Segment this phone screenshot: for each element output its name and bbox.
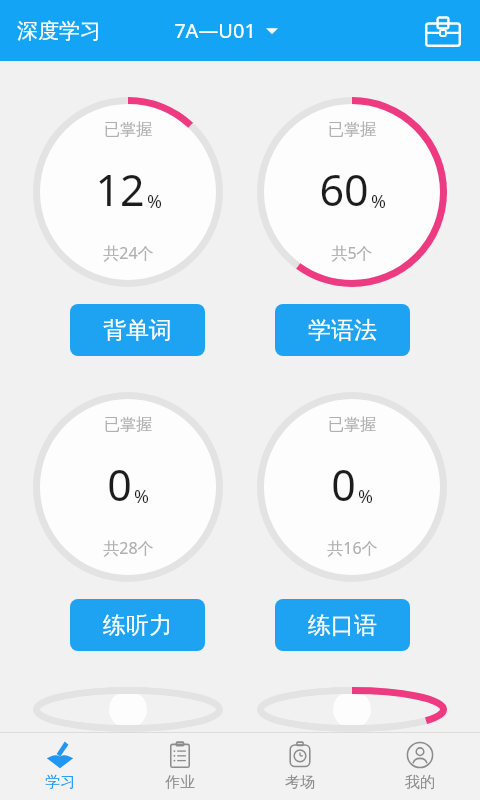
staticText: 7A—U01 — [174, 17, 256, 44]
staticText: 已掌握 — [104, 120, 152, 140]
button[interactable]: 练听力 — [70, 599, 205, 651]
button[interactable]: 考场 — [240, 733, 360, 800]
button[interactable]: 练口语 — [275, 599, 410, 651]
staticText: 0 — [107, 455, 132, 514]
staticText: 背单词 — [103, 316, 172, 345]
button[interactable]: 学语法 — [275, 304, 410, 356]
button[interactable]: 我的 — [360, 733, 480, 800]
staticText: 学习 — [45, 773, 75, 792]
button[interactable]: 7A—U01 — [168, 12, 284, 49]
staticText: 共24个 — [103, 242, 154, 264]
staticText: 练听力 — [103, 611, 172, 640]
button[interactable]: 已掌握 — [257, 687, 447, 732]
staticText: 60 — [319, 160, 369, 219]
staticText: 考场 — [285, 773, 315, 792]
staticText: 12 — [95, 160, 145, 219]
button[interactable]: 已掌握 — [257, 392, 447, 582]
staticText: 共16个 — [327, 537, 378, 559]
staticText: 已掌握 — [328, 415, 376, 435]
button[interactable]: 已掌握 — [33, 687, 223, 732]
staticText: 我的 — [405, 773, 435, 792]
staticText: 0 — [331, 455, 356, 514]
button[interactable]: 背单词 — [70, 304, 205, 356]
button[interactable]: 学习 — [0, 733, 120, 800]
button[interactable]: 已掌握 — [33, 97, 223, 287]
staticText: 共5个 — [331, 242, 373, 264]
staticText: 练口语 — [308, 611, 377, 640]
staticText: 学语法 — [308, 316, 377, 345]
staticText: % — [371, 189, 386, 214]
button[interactable]: 作业 — [120, 733, 240, 800]
staticText: 已掌握 — [328, 120, 376, 140]
staticText: 已掌握 — [104, 415, 152, 435]
staticText: 作业 — [165, 773, 195, 792]
button[interactable]: 已掌握 — [257, 97, 447, 287]
staticText: 深度学习 — [17, 18, 101, 44]
button[interactable]: Toolbox — [418, 6, 468, 56]
staticText: % — [358, 484, 373, 509]
staticText: % — [134, 484, 149, 509]
staticText: % — [147, 189, 162, 214]
staticText: 共28个 — [103, 537, 154, 559]
button[interactable]: 已掌握 — [33, 392, 223, 582]
